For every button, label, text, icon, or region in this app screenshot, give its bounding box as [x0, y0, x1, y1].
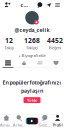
- button[interactable]: Private: [16, 60, 32, 68]
- staticText: Takipçi: [26, 45, 38, 50]
- button[interactable]: + Biyografi ekle: [18, 50, 45, 58]
- button[interactable]: Arkadaşlar: [13, 114, 26, 128]
- staticText: ceyda_celik: [20, 1, 27, 9]
- button[interactable]: Create: [26, 118, 38, 124]
- staticText: Arkadaşlar: [13, 122, 26, 128]
- button[interactable]: Add friends: [2, 0, 12, 10]
- staticText: + Biyografi ekle: [18, 53, 45, 58]
- staticText: Takip: [4, 45, 13, 50]
- button[interactable]: Videos: [0, 60, 16, 68]
- button[interactable]: 12: [1, 36, 17, 50]
- staticText: paylaşın: [21, 87, 43, 94]
- staticText: @ceyda_celik: [14, 26, 49, 34]
- button[interactable]: Profile photo: [25, 11, 39, 24]
- button[interactable]: Settings and privacy: [53, 0, 62, 9]
- button[interactable]: Yükle: [23, 97, 40, 103]
- button[interactable]: Gelen Kutusu: [38, 114, 51, 128]
- button[interactable]: 4452: [47, 36, 63, 50]
- staticText: 12: [5, 36, 13, 45]
- staticText: Gelen Kutusu: [38, 122, 51, 128]
- button[interactable]: Anasayfa: [0, 114, 13, 128]
- staticText: 1268: [24, 36, 40, 45]
- staticText: Profil: [53, 122, 63, 128]
- button[interactable]: Profil: [51, 114, 64, 128]
- button[interactable]: 1268: [24, 36, 40, 50]
- button[interactable]: Share profile: [44, 1, 53, 9]
- button[interactable]: Liked: [48, 60, 64, 68]
- staticText: Yükle: [27, 97, 37, 103]
- staticText: 4452: [47, 36, 63, 45]
- button[interactable]: Reposts: [32, 60, 48, 68]
- button[interactable]: Messages: [35, 0, 44, 9]
- staticText: En popüler fotoğrafınızı: [2, 79, 61, 86]
- staticText: Anasayfa: [0, 122, 13, 128]
- staticText: Beğeni: [49, 45, 61, 50]
